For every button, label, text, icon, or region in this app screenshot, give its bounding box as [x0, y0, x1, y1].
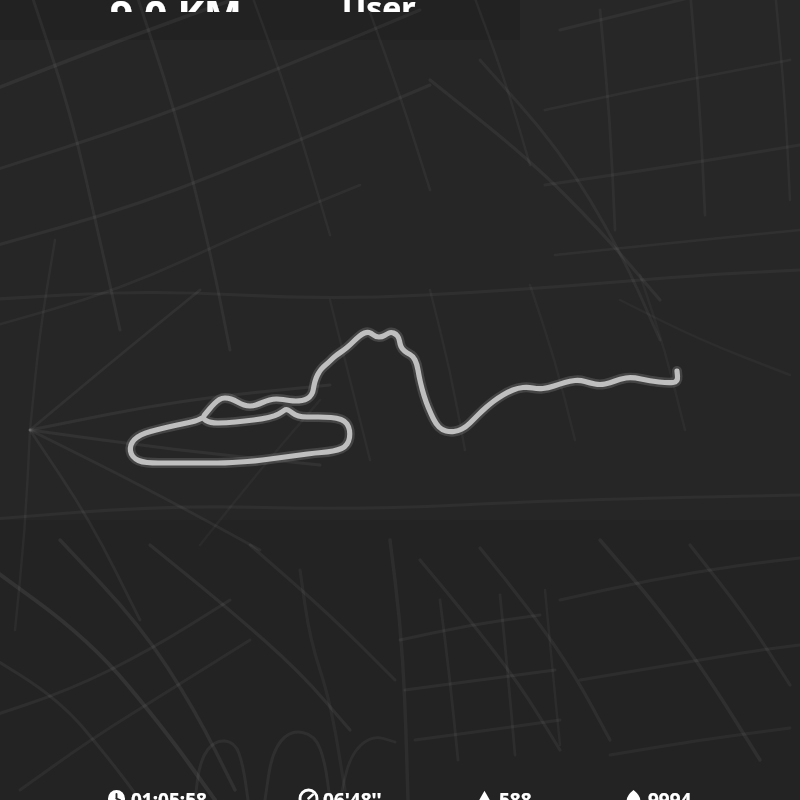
button[interactable]: 9,0 KM — [110, 0, 242, 12]
staticText: 588 — [499, 787, 532, 800]
staticText: 01:05:58 — [131, 787, 207, 800]
button[interactable]: up 588 — [476, 787, 532, 800]
staticText: 06'48'' — [323, 787, 382, 800]
button[interactable]: clock 01:05:58 — [108, 787, 207, 800]
staticText: 9,0 KM — [110, 0, 242, 12]
button[interactable]: cal 9994 — [625, 787, 692, 800]
staticText: 9994 — [648, 787, 692, 800]
button[interactable]: pace 06'48'' — [300, 787, 382, 800]
staticText: User — [342, 0, 416, 12]
button[interactable]: User — [342, 0, 416, 12]
